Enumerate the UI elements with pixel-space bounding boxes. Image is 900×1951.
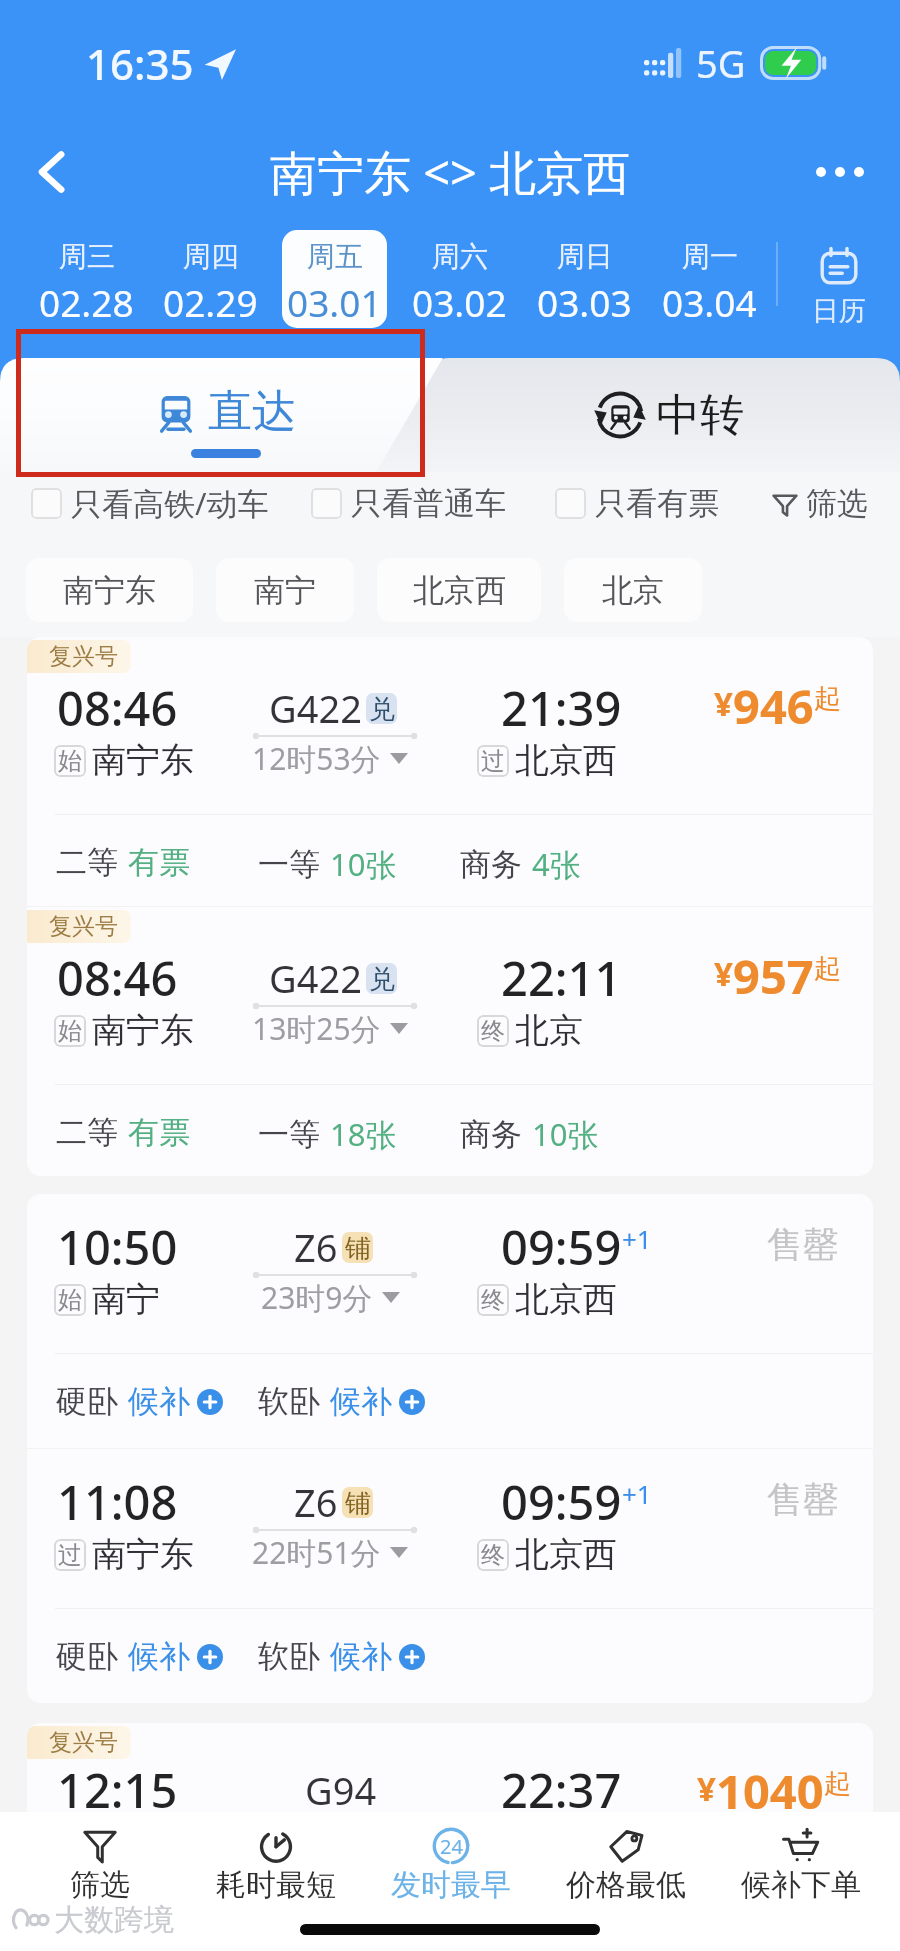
staticText: 03.02: [412, 277, 507, 327]
staticText: 南宁东 <> 北京西: [270, 140, 631, 204]
button[interactable]: 周四: [158, 230, 262, 328]
staticText: 终: [481, 1540, 505, 1570]
staticText: 始: [58, 1016, 82, 1046]
staticText: 南宁东: [92, 1009, 194, 1052]
button[interactable]: 只看普通车: [311, 484, 506, 523]
staticText: 只看有票: [595, 484, 719, 523]
staticText: 周日: [557, 239, 613, 274]
button[interactable]: 周一: [657, 230, 762, 328]
staticText: 一等: [258, 845, 320, 884]
button[interactable]: 11:08: [27, 1449, 873, 1703]
staticText: 4张: [532, 843, 581, 885]
staticText: 商务: [460, 1115, 522, 1154]
staticText: +1: [622, 1221, 652, 1256]
button[interactable]: 周五: [282, 230, 387, 328]
button[interactable]: 日历: [778, 238, 900, 335]
button[interactable]: 只看有票: [555, 484, 719, 523]
button[interactable]: Back: [16, 136, 88, 208]
button[interactable]: 直达: [0, 358, 452, 472]
staticText: 南宁: [254, 571, 316, 610]
staticText: Z6: [294, 1221, 338, 1273]
button[interactable]: 候补下单: [713, 1812, 888, 1912]
staticText: 周一: [682, 239, 738, 274]
button[interactable]: More options: [802, 134, 878, 210]
staticText: 价格最低: [566, 1866, 686, 1904]
staticText: 周四: [183, 239, 239, 274]
staticText: 终: [481, 1285, 505, 1315]
button[interactable]: 周六: [407, 230, 512, 328]
staticText: 957: [733, 944, 814, 1008]
staticText: 只看高铁/动车: [71, 482, 269, 524]
button[interactable]: 复兴号: [27, 637, 873, 906]
staticText: 大数跨境: [54, 1901, 174, 1939]
staticText: 复兴号: [49, 912, 118, 941]
staticText: 02.29: [163, 277, 258, 327]
button[interactable]: 复兴号: [27, 907, 873, 1176]
button[interactable]: 筛选: [772, 484, 868, 523]
staticText: 有票: [128, 843, 190, 882]
staticText: 铺: [345, 1487, 371, 1518]
staticText: 10:50: [57, 1215, 178, 1279]
staticText: +1: [622, 1476, 652, 1511]
staticText: 03.04: [662, 277, 757, 327]
staticText: 946: [733, 674, 814, 738]
staticText: 候补: [330, 1637, 392, 1676]
button[interactable]: 北京: [564, 558, 702, 622]
staticText: 售罄: [767, 1477, 839, 1522]
staticText: 北京西: [515, 1278, 617, 1321]
button[interactable]: 24: [363, 1812, 538, 1912]
staticText: 09:59: [501, 1470, 622, 1534]
staticText: 过: [58, 1540, 82, 1570]
staticText: 08:46: [57, 946, 178, 1010]
button[interactable]: 10:50: [27, 1194, 873, 1448]
button[interactable]: 耗时最短: [188, 1812, 363, 1912]
staticText: 筛选: [70, 1866, 130, 1904]
staticText: 兑: [369, 693, 395, 724]
button[interactable]: 中转: [440, 358, 900, 472]
staticText: 一等: [258, 1115, 320, 1154]
staticText: 北京西: [515, 1533, 617, 1576]
button[interactable]: 复兴号: [27, 1723, 873, 1951]
staticText: 候补: [330, 1382, 392, 1421]
staticText: 10张: [330, 843, 397, 885]
button[interactable]: 价格最低: [538, 1812, 713, 1912]
staticText: 12:15: [57, 1758, 178, 1822]
staticText: 起: [814, 682, 841, 716]
staticText: 过: [481, 746, 505, 776]
staticText: 03.01: [287, 277, 382, 327]
staticText: 南宁东: [92, 1533, 194, 1576]
staticText: 耗时最短: [216, 1866, 336, 1904]
button[interactable]: 南宁: [216, 558, 354, 622]
staticText: 22时51分: [252, 1532, 381, 1573]
staticText: 日历: [812, 294, 866, 328]
staticText: G422: [269, 952, 362, 1004]
staticText: 铺: [345, 1232, 371, 1263]
staticText: 21:39: [501, 676, 622, 740]
staticText: 硬卧: [56, 1382, 118, 1421]
button[interactable]: 南宁东: [26, 558, 193, 622]
staticText: 18张: [330, 1113, 397, 1155]
staticText: 二等: [56, 1113, 118, 1152]
staticText: 中转: [656, 388, 744, 443]
staticText: 终: [481, 1016, 505, 1046]
button[interactable]: 只看高铁/动车: [31, 482, 269, 524]
staticText: 22:11: [501, 946, 622, 1010]
staticText: 硬卧: [56, 1637, 118, 1676]
staticText: 南宁: [92, 1278, 160, 1321]
staticText: 候补: [128, 1637, 190, 1676]
staticText: 北京西: [413, 571, 506, 610]
staticText: 始: [58, 1285, 82, 1315]
staticText: 13时25分: [252, 1008, 381, 1049]
staticText: ¥: [714, 951, 733, 996]
staticText: G422: [269, 682, 362, 734]
button[interactable]: 周日: [532, 230, 637, 328]
staticText: 03.03: [537, 277, 632, 327]
button[interactable]: 北京西: [377, 558, 541, 622]
staticText: 24: [440, 1833, 463, 1860]
staticText: 软卧: [258, 1637, 320, 1676]
button[interactable]: 筛选: [12, 1812, 188, 1912]
staticText: ¥: [714, 681, 733, 726]
button[interactable]: 周三: [34, 230, 138, 328]
staticText: 北京西: [515, 739, 617, 782]
staticText: 10张: [532, 1113, 599, 1155]
